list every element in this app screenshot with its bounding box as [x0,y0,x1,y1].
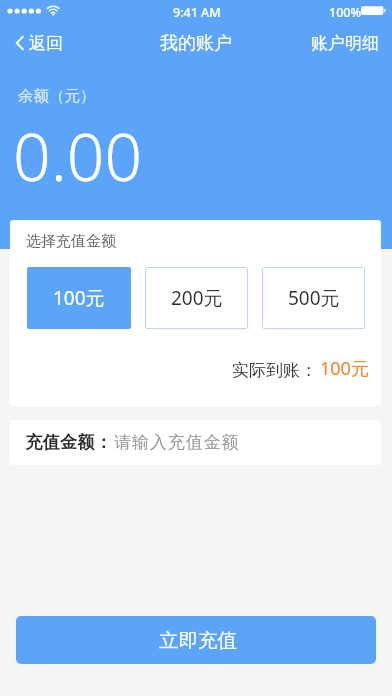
button[interactable]: 账户明细 [301,24,392,62]
button[interactable]: 立即充值 [16,616,376,664]
staticText: 立即充值 [159,628,237,653]
button[interactable]: 返回 [0,24,73,62]
staticText: 9:41 AM [173,4,221,21]
staticText: 账户明细 [311,33,379,54]
button[interactable]: 100元 [27,267,131,329]
other: Wi-Fi [46,4,62,18]
staticText: 我的账户 [160,32,232,55]
other: Battery full [361,4,386,17]
staticText: 200元 [171,285,223,311]
button[interactable]: 充值金额： [10,420,381,465]
staticText: 选择充值金额 [26,232,116,251]
staticText: 500元 [288,285,340,311]
staticText: 100元 [320,356,369,381]
staticText: 余额（元） [18,86,96,106]
staticText: 充值金额： [25,432,112,453]
staticText: 100元 [53,285,105,311]
button[interactable]: 200元 [145,267,248,329]
staticText: 0.00 [13,110,143,200]
staticText: 实际到账： [232,360,317,381]
staticText: 请输入充值金额 [114,432,240,453]
staticText: 返回 [29,33,63,54]
staticText: 100% [329,4,362,21]
button[interactable]: 500元 [262,267,365,329]
other: Signal strength [7,6,47,18]
